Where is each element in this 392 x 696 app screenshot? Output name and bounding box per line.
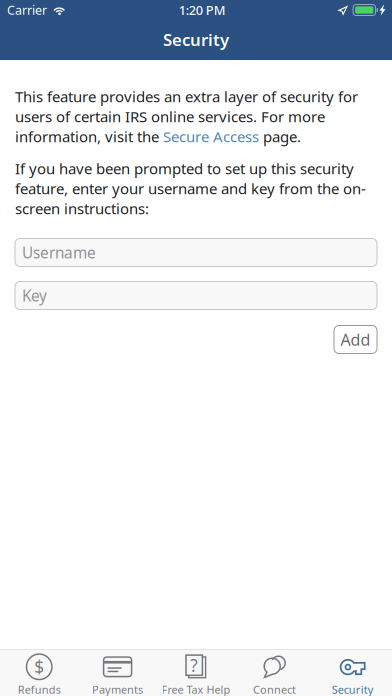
staticText: information, visit the [15, 126, 163, 147]
button[interactable]: Username [15, 238, 377, 266]
staticText: $ [34, 655, 44, 679]
staticText: Free Tax Help [161, 682, 230, 696]
staticText: Secure Access [163, 126, 259, 147]
button[interactable]: Payments [78, 649, 157, 696]
staticText: users of certain IRS online services. Fo… [15, 106, 325, 127]
staticText: Connect [253, 682, 296, 696]
button[interactable]: ? [157, 649, 235, 696]
staticText: page. [259, 126, 301, 147]
staticText: Payments [92, 682, 143, 696]
staticText: This feature provides an extra layer of … [15, 86, 358, 107]
button[interactable]: $ [0, 649, 78, 696]
button[interactable]: Security [314, 649, 392, 696]
button[interactable]: Connect [235, 649, 314, 696]
staticText: Carrier [7, 1, 47, 19]
staticText: If you have been prompted to set up this… [15, 158, 354, 179]
staticText: 1:20 PM [179, 1, 226, 19]
button[interactable]: Add [334, 325, 377, 353]
button[interactable]: Key [15, 281, 377, 309]
staticText: Username [22, 242, 96, 263]
staticText: Key [22, 285, 47, 306]
staticText: Refunds [18, 682, 61, 696]
staticText: Security [332, 682, 374, 696]
staticText: feature, enter your username and key fro… [15, 178, 366, 199]
staticText: Security [163, 28, 229, 51]
staticText: ? [190, 653, 198, 677]
staticText: Add [340, 329, 370, 350]
staticText: screen instructions: [15, 198, 149, 219]
